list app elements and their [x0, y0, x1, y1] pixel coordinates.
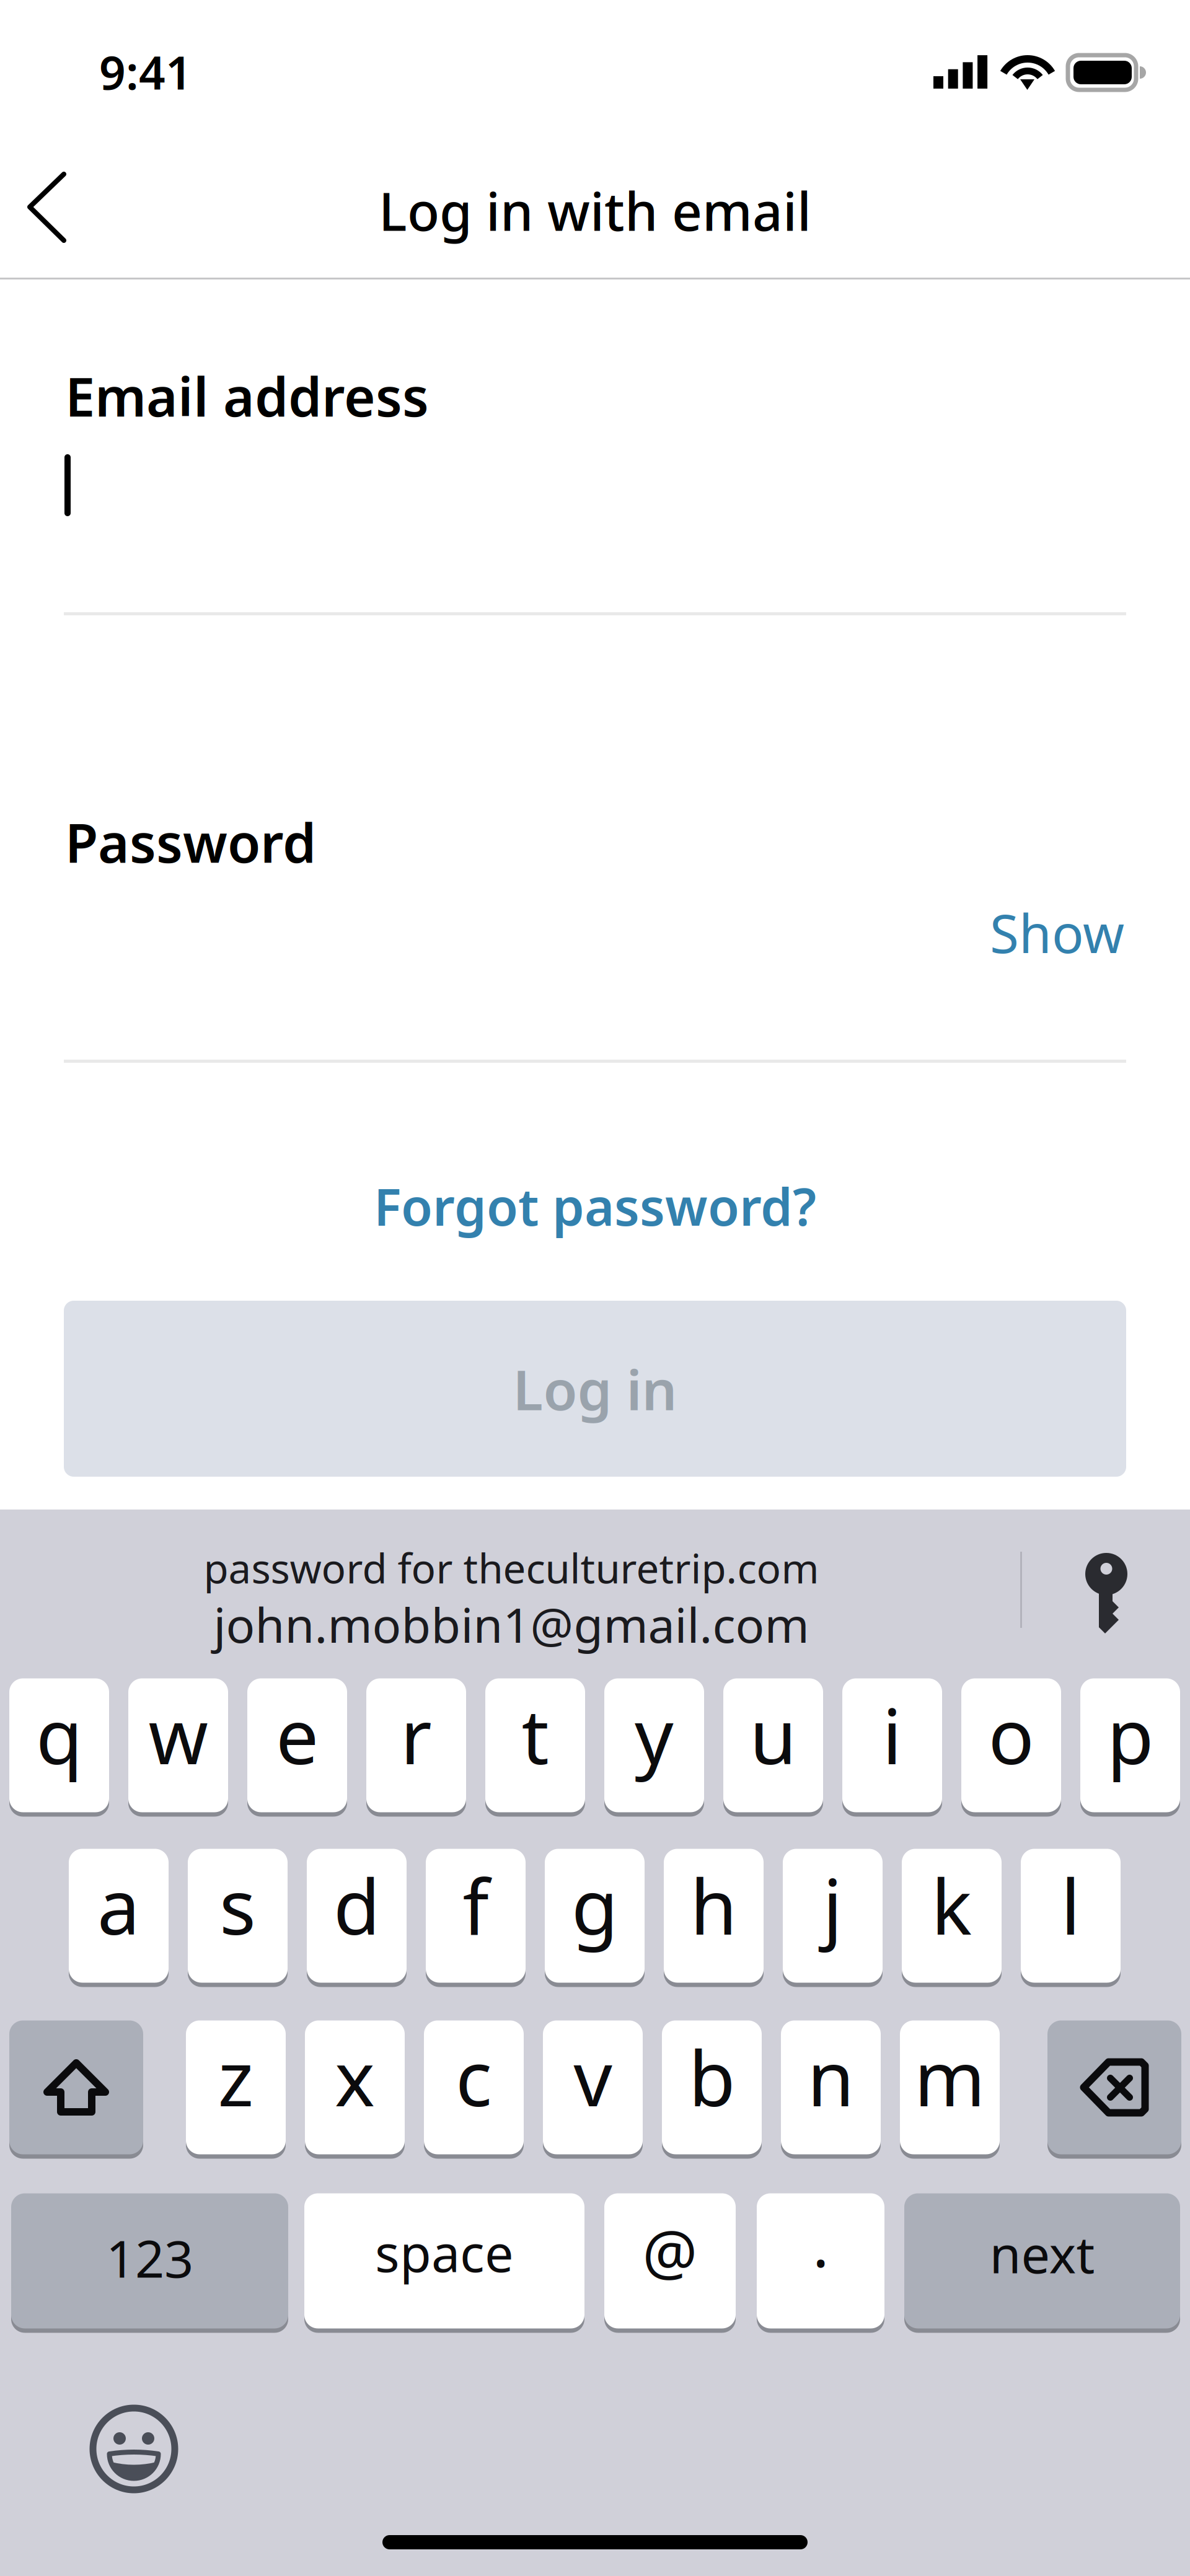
button[interactable]: Show	[903, 881, 1126, 985]
staticText: y	[635, 1684, 674, 1785]
staticText: m	[914, 2026, 985, 2127]
button[interactable]: r	[366, 1676, 466, 1814]
staticText: v	[574, 2026, 612, 2127]
staticText: g	[571, 1855, 618, 1956]
button[interactable]: z	[186, 2018, 286, 2156]
button[interactable]: d	[307, 1847, 407, 1985]
staticText: a	[97, 1855, 140, 1956]
button[interactable]: g	[545, 1847, 645, 1985]
staticText: n	[807, 2026, 854, 2127]
button[interactable]: a	[69, 1847, 169, 1985]
staticText: i	[882, 1684, 902, 1785]
staticText: o	[988, 1684, 1034, 1785]
button[interactable]: b	[662, 2018, 762, 2156]
button[interactable]: j	[783, 1847, 883, 1985]
button[interactable]: m	[900, 2018, 1000, 2156]
button[interactable]: p	[1080, 1676, 1180, 1814]
button[interactable]: next	[904, 2191, 1180, 2331]
staticText: space	[375, 2218, 514, 2286]
button[interactable]: v	[543, 2018, 643, 2156]
button[interactable]: e	[247, 1676, 347, 1814]
staticText: w	[148, 1684, 208, 1785]
staticText: q	[36, 1684, 82, 1785]
staticText: Log in with email	[379, 175, 811, 245]
staticText: t	[522, 1684, 549, 1785]
staticText: 123	[106, 2224, 193, 2292]
button[interactable]: n	[781, 2018, 881, 2156]
staticText: u	[750, 1684, 797, 1785]
button[interactable]: 123	[11, 2191, 288, 2331]
button[interactable]: k	[902, 1847, 1002, 1985]
button[interactable]: s	[188, 1847, 288, 1985]
staticText: z	[218, 2026, 254, 2127]
staticText: Forgot password?	[374, 1172, 816, 1240]
button[interactable]: y	[604, 1676, 704, 1814]
staticText: Show	[990, 897, 1124, 968]
button[interactable]: f	[426, 1847, 526, 1985]
staticText: x	[335, 2026, 375, 2127]
staticText: s	[219, 1855, 256, 1956]
button[interactable]: w	[128, 1676, 228, 1814]
button[interactable]: Forgot password?	[285, 1156, 905, 1255]
staticText: r	[400, 1684, 432, 1785]
button[interactable]: q	[9, 1676, 109, 1814]
staticText: f	[463, 1855, 489, 1956]
button[interactable]: Shift	[9, 2018, 143, 2156]
button[interactable]: c	[424, 2018, 524, 2156]
button[interactable]: space	[304, 2191, 584, 2331]
button[interactable]: Log in	[64, 1301, 1126, 1477]
button[interactable]: @	[604, 2191, 736, 2331]
button[interactable]: u	[723, 1676, 823, 1814]
staticText: h	[690, 1855, 737, 1956]
staticText: Email address	[65, 360, 429, 431]
staticText: 9:41	[99, 41, 192, 102]
staticText: e	[276, 1684, 319, 1785]
staticText: j	[823, 1855, 843, 1956]
button[interactable]: Delete	[1047, 2018, 1181, 2156]
staticText: password for theculturetrip.com	[204, 1541, 819, 1595]
staticText: Password	[65, 806, 316, 878]
staticText: d	[333, 1855, 380, 1956]
staticText: next	[989, 2219, 1095, 2287]
staticText: c	[456, 2026, 492, 2127]
button[interactable]: Back	[0, 141, 104, 279]
button[interactable]: l	[1021, 1847, 1121, 1985]
button[interactable]: o	[961, 1676, 1061, 1814]
button[interactable]: x	[305, 2018, 405, 2156]
button[interactable]: Emoji	[72, 2387, 196, 2511]
staticText: .	[813, 2203, 829, 2284]
staticText: john.mobbin1@gmail.com	[214, 1592, 809, 1656]
button[interactable]: i	[842, 1676, 942, 1814]
staticText: Log in	[513, 1352, 677, 1425]
staticText: k	[931, 1855, 972, 1956]
staticText: l	[1061, 1855, 1081, 1956]
button[interactable]: .	[757, 2191, 884, 2331]
staticText: b	[689, 2026, 735, 2127]
button[interactable]: t	[485, 1676, 585, 1814]
staticText: p	[1107, 1684, 1153, 1785]
staticText: @	[642, 2210, 698, 2292]
button[interactable]: h	[664, 1847, 764, 1985]
button[interactable]: Passwords	[1054, 1524, 1159, 1648]
button[interactable]: password for theculturetrip.com	[22, 1525, 1001, 1655]
